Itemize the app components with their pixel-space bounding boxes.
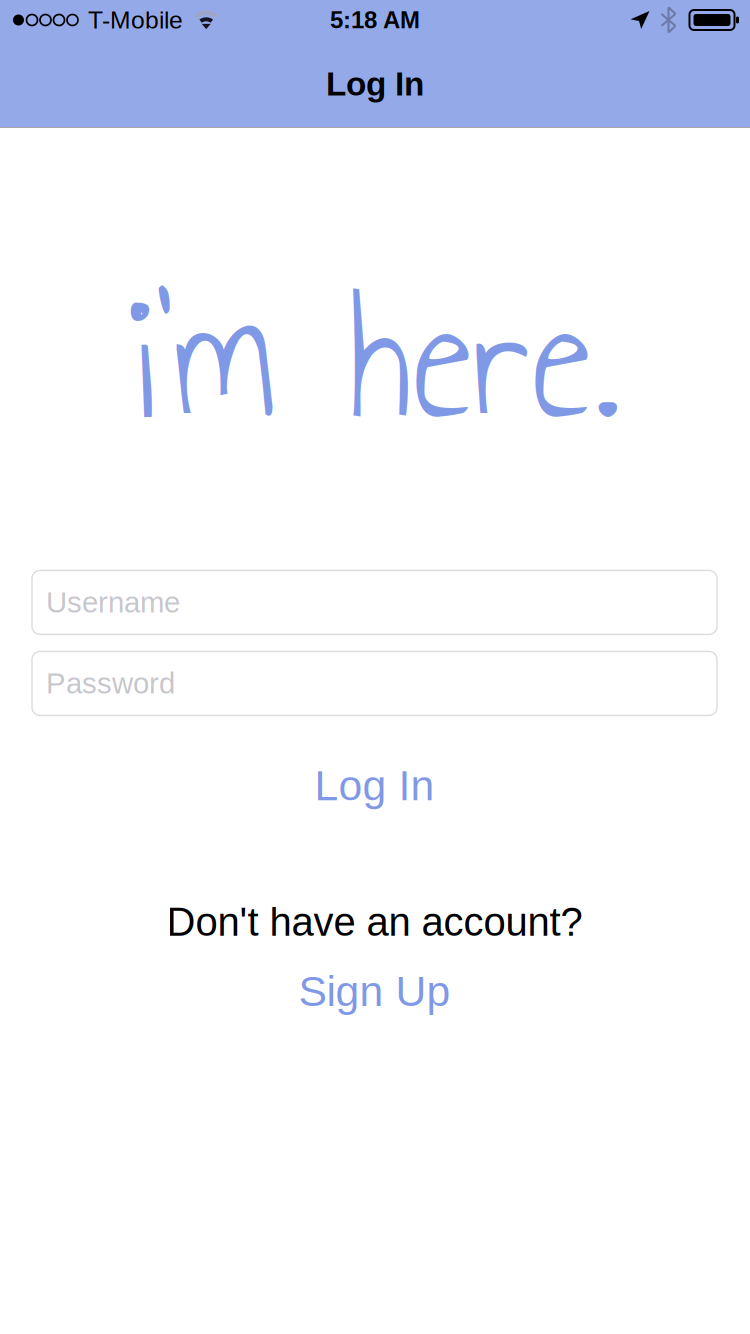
staticText: 5:18 AM — [330, 7, 420, 33]
staticText: Username — [46, 586, 180, 619]
staticText: Log In — [326, 65, 424, 103]
staticText: Password — [46, 667, 175, 700]
button[interactable]: Username — [32, 570, 717, 634]
staticText: Don't have an account? — [166, 899, 582, 944]
staticText: Log In — [314, 762, 434, 809]
button[interactable]: Sign Up — [32, 965, 717, 1017]
staticText: T-Mobile — [88, 6, 183, 34]
staticText: Sign Up — [298, 967, 450, 1015]
button[interactable]: Password — [32, 651, 717, 715]
button[interactable]: Log In — [32, 756, 717, 814]
staticText: i'm here. — [129, 223, 620, 494]
